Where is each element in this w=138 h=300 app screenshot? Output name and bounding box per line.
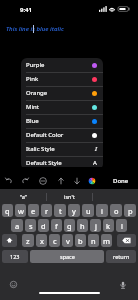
button[interactable]: c xyxy=(49,234,60,247)
button[interactable]: Done xyxy=(107,169,138,188)
staticText: c xyxy=(53,236,57,246)
button[interactable]: Italic Style xyxy=(21,142,103,156)
button[interactable]: Default Color xyxy=(21,128,103,142)
staticText: l xyxy=(121,221,123,231)
button[interactable] xyxy=(92,189,138,204)
button[interactable]: e xyxy=(28,204,39,217)
staticText: Orange xyxy=(26,89,48,97)
button[interactable]: Move down xyxy=(69,172,84,189)
staticText: Mint xyxy=(26,103,39,111)
button[interactable]: Blue xyxy=(21,114,103,128)
button[interactable]: u xyxy=(82,204,94,217)
staticText: a xyxy=(15,221,20,231)
staticText: e xyxy=(31,206,36,216)
staticText: r xyxy=(45,206,49,216)
staticText: k xyxy=(106,221,111,231)
button[interactable]: y xyxy=(68,204,80,217)
button[interactable]: Outdent xyxy=(33,172,53,189)
button[interactable]: Redo xyxy=(17,172,33,189)
staticText: This line is blue italic xyxy=(6,25,64,33)
button[interactable]: Mint xyxy=(21,100,103,114)
staticText: Default Color xyxy=(26,131,64,139)
staticText: o xyxy=(114,206,119,216)
button[interactable]: Pink xyxy=(21,72,103,86)
staticText: Pink xyxy=(26,75,39,83)
button[interactable]: a xyxy=(11,219,23,232)
staticText: m xyxy=(103,236,111,246)
button[interactable]: Undo xyxy=(0,172,17,189)
button[interactable]: g xyxy=(64,219,75,232)
button[interactable]: p xyxy=(124,204,136,217)
staticText: Italic Style xyxy=(26,145,55,153)
staticText: return xyxy=(113,253,130,260)
button[interactable]: v xyxy=(62,234,73,247)
button[interactable]: Dictation xyxy=(119,281,127,289)
staticText: t xyxy=(59,206,62,216)
staticText: Purple xyxy=(26,61,45,69)
staticText: p xyxy=(128,206,133,216)
button[interactable]: Purple xyxy=(21,58,103,72)
button[interactable]: r xyxy=(41,204,52,217)
button[interactable]: Default Style xyxy=(21,156,103,170)
button[interactable]: “a” xyxy=(0,189,46,204)
button[interactable]: t xyxy=(54,204,66,217)
staticText: isn't xyxy=(64,193,75,200)
button[interactable]: m xyxy=(101,234,112,247)
button[interactable]: Backspace xyxy=(117,234,136,247)
button[interactable]: b xyxy=(75,234,86,247)
button[interactable]: Orange xyxy=(21,86,103,100)
button[interactable]: j xyxy=(90,219,101,232)
staticText: u xyxy=(86,206,91,216)
staticText: Default Style xyxy=(26,159,62,167)
staticText: 123 xyxy=(10,253,20,260)
staticText: space xyxy=(60,253,75,260)
button[interactable]: q xyxy=(2,204,13,217)
staticText: z xyxy=(26,236,30,246)
button[interactable]: i xyxy=(96,204,108,217)
button[interactable]: k xyxy=(103,219,114,232)
staticText: w xyxy=(18,206,24,216)
button[interactable]: o xyxy=(110,204,122,217)
button[interactable]: s xyxy=(25,219,36,232)
button[interactable]: Shift xyxy=(2,234,17,247)
staticText: y xyxy=(72,206,76,216)
staticText: I xyxy=(95,145,97,153)
staticText: x xyxy=(40,236,44,246)
staticText: d xyxy=(41,221,46,231)
button[interactable]: Color picker xyxy=(84,172,100,189)
button[interactable]: space xyxy=(30,250,104,263)
staticText: “a” xyxy=(20,193,27,200)
staticText: h xyxy=(80,221,85,231)
button[interactable]: l xyxy=(116,219,127,232)
button[interactable]: h xyxy=(77,219,88,232)
button[interactable]: f xyxy=(51,219,62,232)
button[interactable]: w xyxy=(15,204,26,217)
button[interactable]: isn't xyxy=(46,189,92,204)
staticText: i xyxy=(101,206,103,216)
staticText: 9:41 xyxy=(20,6,32,14)
staticText: n xyxy=(91,236,96,246)
staticText: s xyxy=(29,221,33,231)
button[interactable]: Emoji xyxy=(10,281,17,288)
button[interactable]: return xyxy=(106,250,136,263)
staticText: q xyxy=(5,206,10,216)
button[interactable]: z xyxy=(22,234,34,247)
button[interactable]: x xyxy=(36,234,47,247)
button[interactable]: d xyxy=(38,219,49,232)
button[interactable]: Move up xyxy=(53,172,69,189)
staticText: f xyxy=(55,221,58,231)
button[interactable]: n xyxy=(88,234,99,247)
staticText: Blue xyxy=(26,117,39,125)
staticText: j xyxy=(95,221,97,231)
staticText: A xyxy=(93,159,97,167)
button[interactable]: 123 xyxy=(2,250,28,263)
staticText: b xyxy=(78,236,83,246)
staticText: g xyxy=(67,221,72,231)
staticText: v xyxy=(66,236,70,246)
